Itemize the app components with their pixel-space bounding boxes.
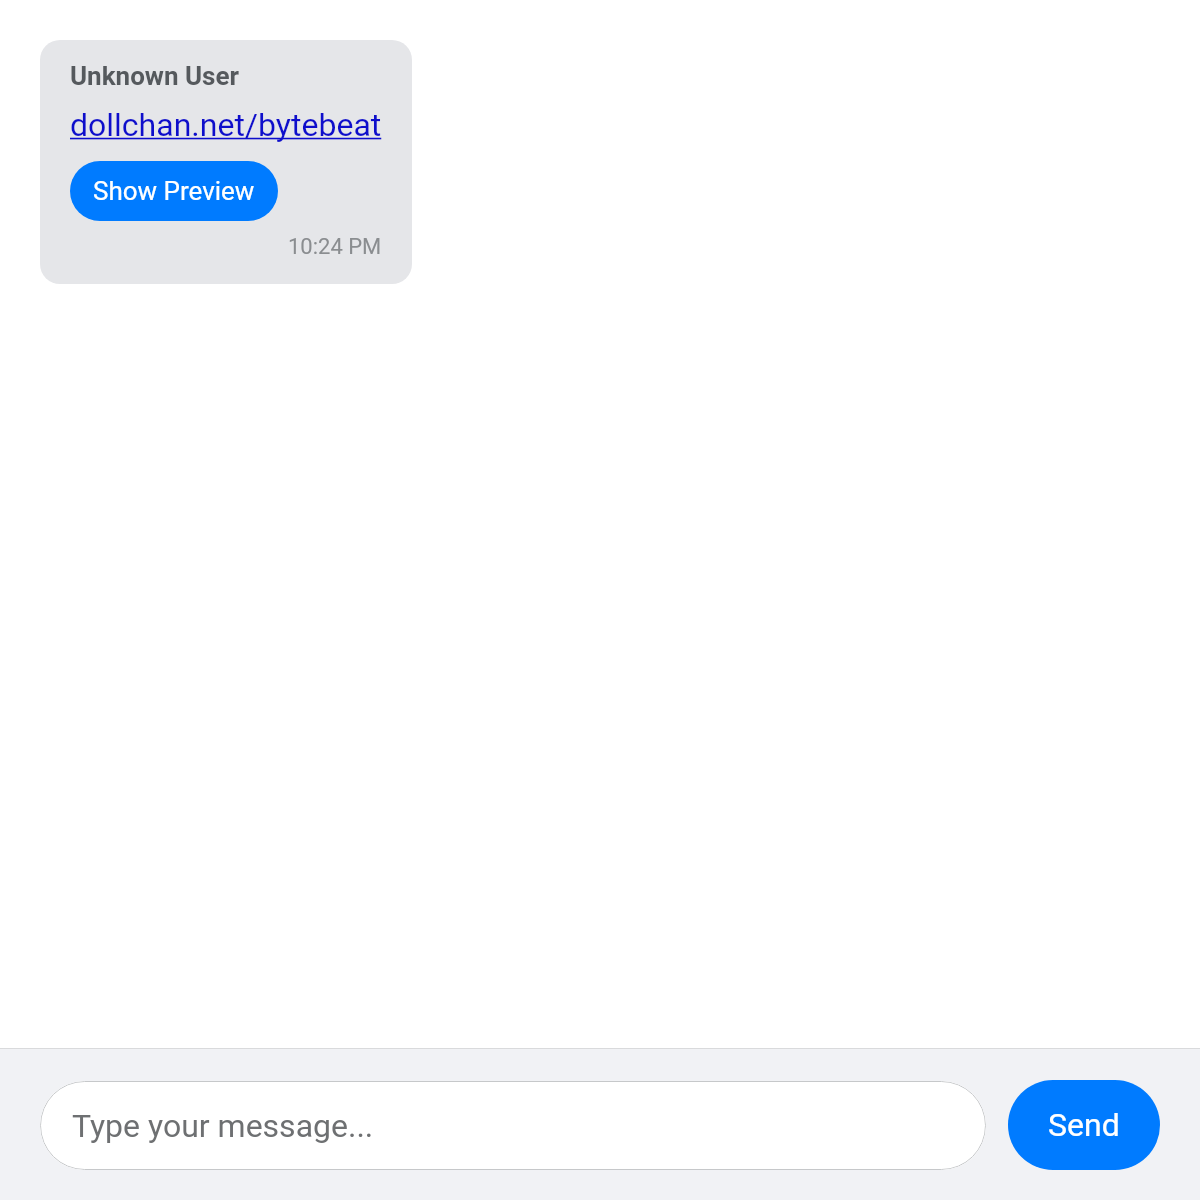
button[interactable]: Unknown User <box>40 40 412 284</box>
staticText: Send <box>1048 1106 1120 1144</box>
staticText: dollchan.net/bytebeat <box>70 106 382 144</box>
button[interactable]: Send message <box>1008 1080 1160 1170</box>
staticText: 10:24 PM <box>288 234 382 260</box>
button[interactable]: Type your message... <box>40 1081 986 1170</box>
button[interactable]: Show Preview <box>70 161 278 221</box>
staticText: Type your message... <box>72 1107 374 1145</box>
staticText: Show Preview <box>93 176 255 206</box>
staticText: Unknown User <box>70 61 240 91</box>
